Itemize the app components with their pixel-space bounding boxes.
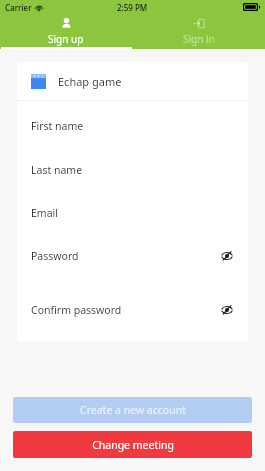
- staticText: 2:59 PM: [117, 2, 148, 13]
- button[interactable]: Change meeting: [13, 431, 252, 458]
- button[interactable]: Show password: [220, 303, 234, 317]
- staticText: Sign in: [183, 32, 215, 46]
- staticText: Last name: [31, 163, 83, 177]
- staticText: Change meeting: [92, 438, 174, 452]
- button[interactable]: Sign up: [0, 14, 132, 49]
- button[interactable]: Last name: [31, 163, 234, 177]
- staticText: Sign up: [48, 32, 84, 46]
- staticText: Carrier: [5, 2, 32, 13]
- button[interactable]: First name: [31, 119, 234, 133]
- staticText: Password: [31, 249, 79, 263]
- staticText: First name: [31, 119, 84, 133]
- button[interactable]: Password: [31, 249, 234, 263]
- staticText: Echap game: [58, 74, 122, 89]
- button[interactable]: Email: [31, 206, 234, 220]
- button[interactable]: Show password: [220, 249, 234, 263]
- button[interactable]: Confirm password: [31, 303, 234, 317]
- button[interactable]: Sign in: [132, 14, 265, 49]
- button[interactable]: Create a new account: [13, 397, 252, 423]
- staticText: Email: [31, 206, 58, 220]
- staticText: Create a new account: [80, 403, 186, 417]
- staticText: Confirm password: [31, 303, 122, 317]
